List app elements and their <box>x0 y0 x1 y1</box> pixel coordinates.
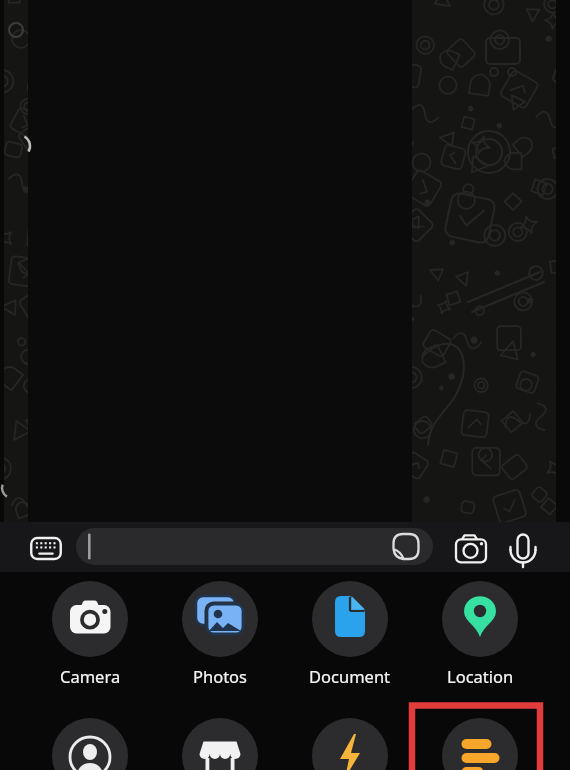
button[interactable]: Location <box>410 664 550 688</box>
button[interactable] <box>312 718 388 770</box>
staticText: Camera <box>60 665 121 687</box>
button[interactable] <box>29 535 63 562</box>
staticText: Location <box>447 665 514 687</box>
button[interactable] <box>312 581 388 657</box>
button[interactable] <box>52 718 128 770</box>
staticText: Document <box>309 665 391 687</box>
button[interactable] <box>52 581 128 657</box>
button[interactable] <box>76 528 433 565</box>
button[interactable] <box>182 718 258 770</box>
staticText: Photos <box>193 665 248 687</box>
button[interactable] <box>182 581 258 657</box>
button[interactable] <box>503 526 543 570</box>
button[interactable]: Camera <box>20 664 160 688</box>
button[interactable] <box>449 526 493 570</box>
button[interactable] <box>442 718 518 770</box>
button[interactable]: Photos <box>150 664 290 688</box>
button[interactable]: Document <box>280 664 420 688</box>
button[interactable] <box>442 581 518 657</box>
